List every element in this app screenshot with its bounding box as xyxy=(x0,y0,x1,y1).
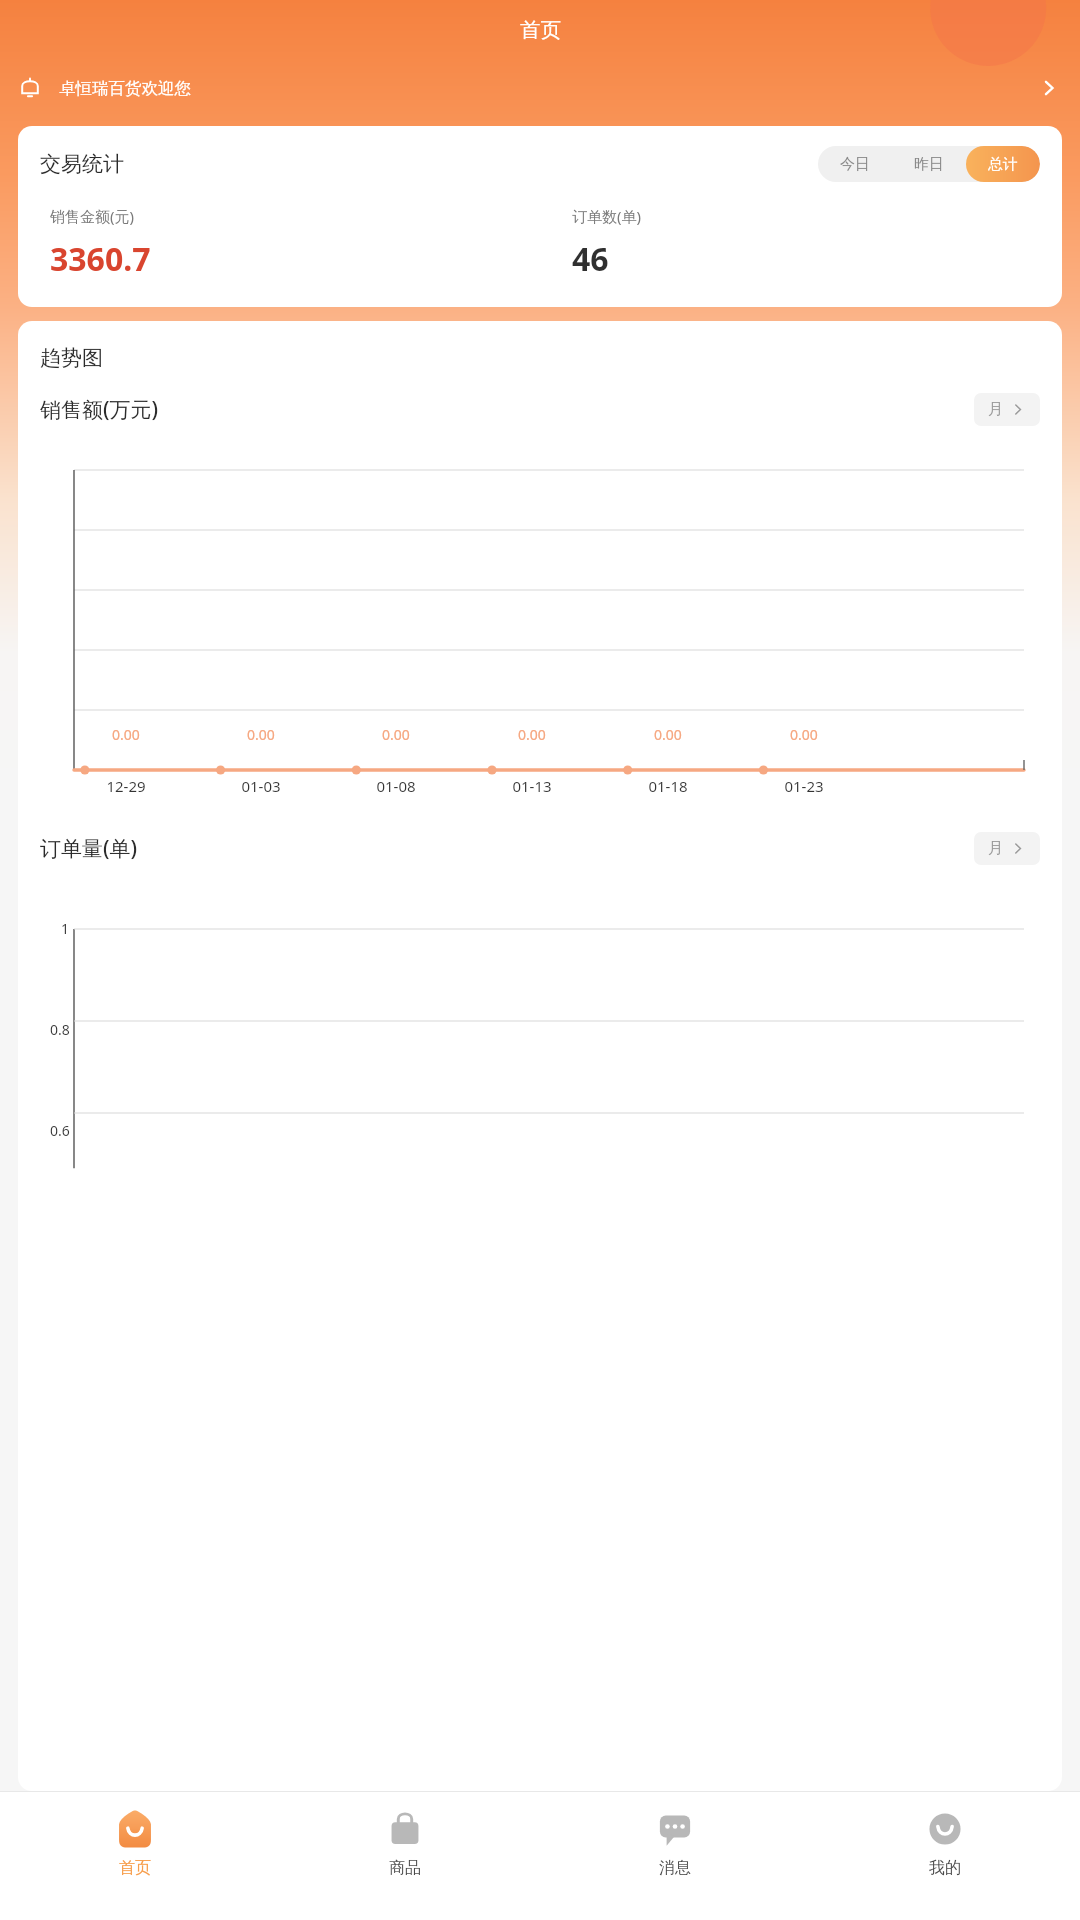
staticText: 0.8 xyxy=(50,1020,70,1039)
staticText: 今日 xyxy=(840,155,870,174)
staticText: 0.00 xyxy=(112,725,140,744)
button[interactable]: 昨日 xyxy=(892,146,966,182)
button[interactable]: 今日 xyxy=(818,146,892,182)
staticText: 卓恒瑞百货欢迎您 xyxy=(59,78,191,99)
staticText: 01-18 xyxy=(648,776,688,796)
staticText: 月 xyxy=(988,839,1003,858)
staticText: 订单量(单) xyxy=(40,834,138,863)
button[interactable]: 消息 xyxy=(540,1792,810,1920)
staticText: 总计 xyxy=(988,155,1018,174)
button[interactable]: 卓恒瑞百货欢迎您 xyxy=(0,66,1080,110)
button[interactable]: 月 xyxy=(974,832,1040,865)
staticText: 01-08 xyxy=(376,776,416,796)
staticText: 趋势图 xyxy=(40,345,103,371)
staticText: 0.00 xyxy=(790,725,818,744)
staticText: 0.00 xyxy=(518,725,546,744)
staticText: 昨日 xyxy=(914,155,944,174)
staticText: 01-13 xyxy=(512,776,552,796)
staticText: 1 xyxy=(61,921,70,938)
button[interactable]: 我的 xyxy=(810,1792,1080,1920)
button[interactable]: 月 xyxy=(974,393,1040,426)
staticText: 46 xyxy=(572,237,609,281)
staticText: 0.00 xyxy=(382,725,410,744)
other: More xyxy=(1039,76,1063,100)
staticText: 消息 xyxy=(659,1858,691,1878)
button[interactable]: 商品 xyxy=(270,1792,540,1920)
staticText: 首页 xyxy=(520,17,561,43)
staticText: 01-03 xyxy=(241,776,281,796)
staticText: 销售金额(元) xyxy=(50,206,135,226)
staticText: 商品 xyxy=(389,1858,421,1878)
staticText: 12-29 xyxy=(106,776,146,796)
staticText: 3360.7 xyxy=(50,237,151,281)
staticText: 我的 xyxy=(929,1858,961,1878)
staticText: 销售额(万元) xyxy=(40,395,159,424)
button[interactable]: 首页 xyxy=(0,1792,270,1920)
staticText: 订单数(单) xyxy=(572,206,642,226)
staticText: 0.00 xyxy=(654,725,682,744)
staticText: 首页 xyxy=(119,1858,151,1878)
staticText: 交易统计 xyxy=(40,151,124,177)
staticText: 0.6 xyxy=(50,1121,70,1140)
staticText: 月 xyxy=(988,400,1003,419)
button[interactable]: 总计 xyxy=(966,146,1040,182)
staticText: 01-23 xyxy=(784,776,824,796)
staticText: 0.00 xyxy=(247,725,275,744)
